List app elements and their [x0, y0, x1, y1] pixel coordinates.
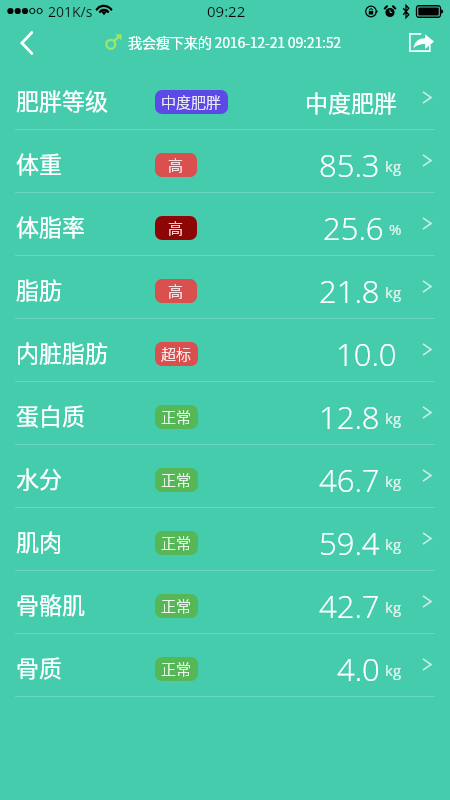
- staticText: 内脏脂肪: [16, 335, 108, 368]
- staticText: 4.0: [337, 648, 380, 690]
- staticText: 09:22: [207, 1, 246, 21]
- button[interactable]: 骨骼肌: [0, 571, 450, 634]
- staticText: kg: [385, 282, 402, 302]
- staticText: 59.4: [319, 522, 380, 564]
- staticText: 骨骼肌: [16, 587, 85, 620]
- staticText: 中度肥胖: [161, 91, 222, 113]
- staticText: 肥胖等级: [16, 83, 108, 116]
- staticText: kg: [385, 660, 402, 680]
- button[interactable]: Back: [0, 26, 54, 60]
- staticText: 201K/s: [48, 2, 93, 21]
- button[interactable]: 体脂率: [0, 193, 450, 256]
- button[interactable]: 体重: [0, 130, 450, 193]
- staticText: 高: [168, 154, 184, 176]
- staticText: %: [389, 219, 402, 239]
- staticText: 蛋白质: [16, 398, 85, 431]
- staticText: 我会瘦下来的 2016-12-21 09:21:52: [128, 32, 341, 53]
- button[interactable]: 肌肉: [0, 508, 450, 571]
- staticText: 高: [168, 217, 184, 239]
- staticText: kg: [385, 156, 402, 176]
- staticText: kg: [385, 471, 402, 491]
- staticText: 25.6: [323, 207, 384, 249]
- staticText: 10.0: [336, 333, 397, 375]
- staticText: 高: [168, 280, 184, 302]
- button[interactable]: 内脏脂肪: [0, 319, 450, 382]
- staticText: 正常: [161, 595, 192, 617]
- button[interactable]: Share: [398, 26, 445, 58]
- button[interactable]: 脂肪: [0, 256, 450, 319]
- button[interactable]: 肥胖等级: [0, 67, 450, 130]
- staticText: 正常: [161, 469, 192, 491]
- staticText: 超标: [161, 343, 192, 365]
- staticText: 21.8: [319, 270, 380, 312]
- staticText: 正常: [161, 406, 192, 428]
- staticText: 体脂率: [16, 209, 85, 242]
- staticText: 脂肪: [16, 272, 62, 305]
- staticText: 85.3: [319, 144, 380, 186]
- staticText: kg: [385, 534, 402, 554]
- staticText: 骨质: [16, 650, 62, 683]
- button[interactable]: 蛋白质: [0, 382, 450, 445]
- staticText: kg: [385, 408, 402, 428]
- staticText: 体重: [16, 146, 62, 179]
- staticText: 正常: [161, 532, 192, 554]
- staticText: 12.8: [319, 396, 380, 438]
- staticText: 水分: [16, 461, 62, 494]
- staticText: kg: [385, 597, 402, 617]
- staticText: 42.7: [319, 585, 380, 627]
- button[interactable]: 骨质: [0, 634, 450, 697]
- staticText: 46.7: [319, 459, 380, 501]
- staticText: 中度肥胖: [305, 85, 397, 118]
- staticText: 肌肉: [16, 524, 62, 557]
- staticText: 正常: [161, 658, 192, 680]
- button[interactable]: 水分: [0, 445, 450, 508]
